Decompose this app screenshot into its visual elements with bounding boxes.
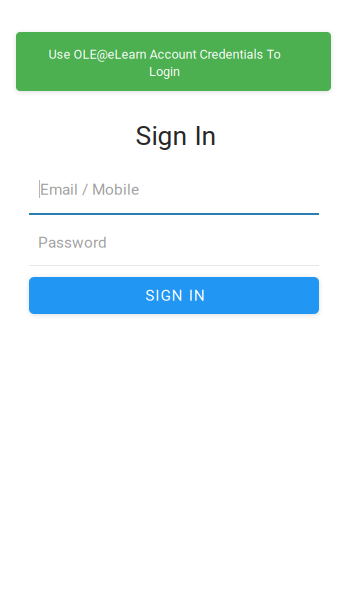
staticText: Use OLE@eLearn Account Credentials To — [48, 47, 280, 62]
staticText: Sign In — [135, 120, 216, 151]
staticText: SIGN IN — [145, 286, 205, 304]
button[interactable]: SIGN IN — [29, 277, 319, 314]
staticText: Password — [38, 233, 107, 251]
button[interactable]: Password — [29, 233, 319, 268]
button[interactable]: Email / Mobile — [29, 180, 319, 215]
staticText: Login — [149, 64, 180, 79]
staticText: Email / Mobile — [40, 180, 139, 198]
